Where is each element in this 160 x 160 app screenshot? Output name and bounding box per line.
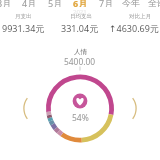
staticText: 331.04元	[61, 22, 99, 34]
staticText: 9931.34元	[2, 22, 45, 34]
staticText: 2021	[73, 8, 87, 16]
staticText: 全部	[148, 0, 160, 7]
button[interactable]: 今年	[118, 0, 144, 7]
staticText: 今年	[122, 0, 140, 7]
staticText: ↑4630.69元	[109, 22, 159, 34]
button[interactable]: 月支出	[0, 13, 49, 34]
button[interactable]: 日均支出	[54, 13, 106, 34]
staticText: 3月	[0, 0, 12, 7]
button[interactable]: 5月	[42, 0, 68, 7]
staticText: 5400.00	[64, 56, 96, 67]
staticText: 54%	[72, 112, 89, 124]
staticText: 5月	[48, 0, 63, 7]
staticText: 月支出	[15, 13, 32, 20]
button[interactable]: 全部	[144, 0, 160, 7]
staticText: 对比上月	[129, 13, 151, 20]
button[interactable]: 4月	[16, 0, 42, 7]
staticText: 日均支出	[70, 13, 92, 20]
button[interactable]: 3月	[0, 0, 17, 7]
staticText: 4月	[22, 0, 37, 7]
staticText: 人情	[74, 48, 87, 56]
button[interactable]: 对比上月	[108, 13, 160, 34]
button[interactable]: 7月	[93, 0, 119, 7]
staticText: 6月	[73, 0, 88, 7]
other: Expense category chart	[0, 0, 160, 160]
button[interactable]: 6月	[67, 0, 93, 7]
staticText: 7月	[99, 0, 114, 7]
